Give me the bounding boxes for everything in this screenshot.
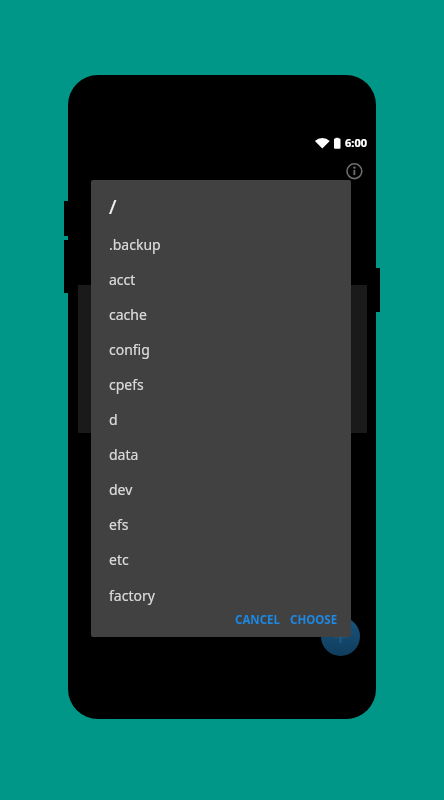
button[interactable]: / [91, 180, 351, 233]
button[interactable]: CHOOSE [284, 604, 344, 636]
button[interactable]: efs [91, 507, 351, 542]
button[interactable]: data [91, 437, 351, 472]
staticText: dev [109, 480, 133, 499]
staticText: cache [109, 305, 147, 324]
staticText: / [109, 193, 117, 220]
staticText: 6:00 [345, 135, 367, 150]
button[interactable]: .backup [91, 227, 351, 262]
button[interactable]: cache [91, 297, 351, 332]
button[interactable]: cpefs [91, 367, 351, 402]
staticText: efs [109, 515, 129, 534]
staticText: acct [109, 270, 136, 289]
button[interactable]: dev [91, 472, 351, 507]
staticText: .backup [109, 235, 161, 254]
staticText: data [109, 445, 139, 464]
staticText: CANCEL [235, 612, 280, 628]
button[interactable]: factory [91, 578, 351, 613]
staticText: factory [109, 586, 155, 605]
button[interactable] [321, 617, 360, 656]
staticText: cpefs [109, 375, 144, 394]
staticText: etc [109, 550, 129, 569]
button[interactable]: acct [91, 262, 351, 297]
staticText: CHOOSE [290, 612, 338, 628]
staticText: d [109, 410, 118, 429]
button[interactable]: etc [91, 542, 351, 577]
button[interactable]: d [91, 402, 351, 437]
staticText: config [109, 340, 150, 359]
button[interactable]: config [91, 332, 351, 367]
button[interactable]: CANCEL [227, 604, 287, 636]
